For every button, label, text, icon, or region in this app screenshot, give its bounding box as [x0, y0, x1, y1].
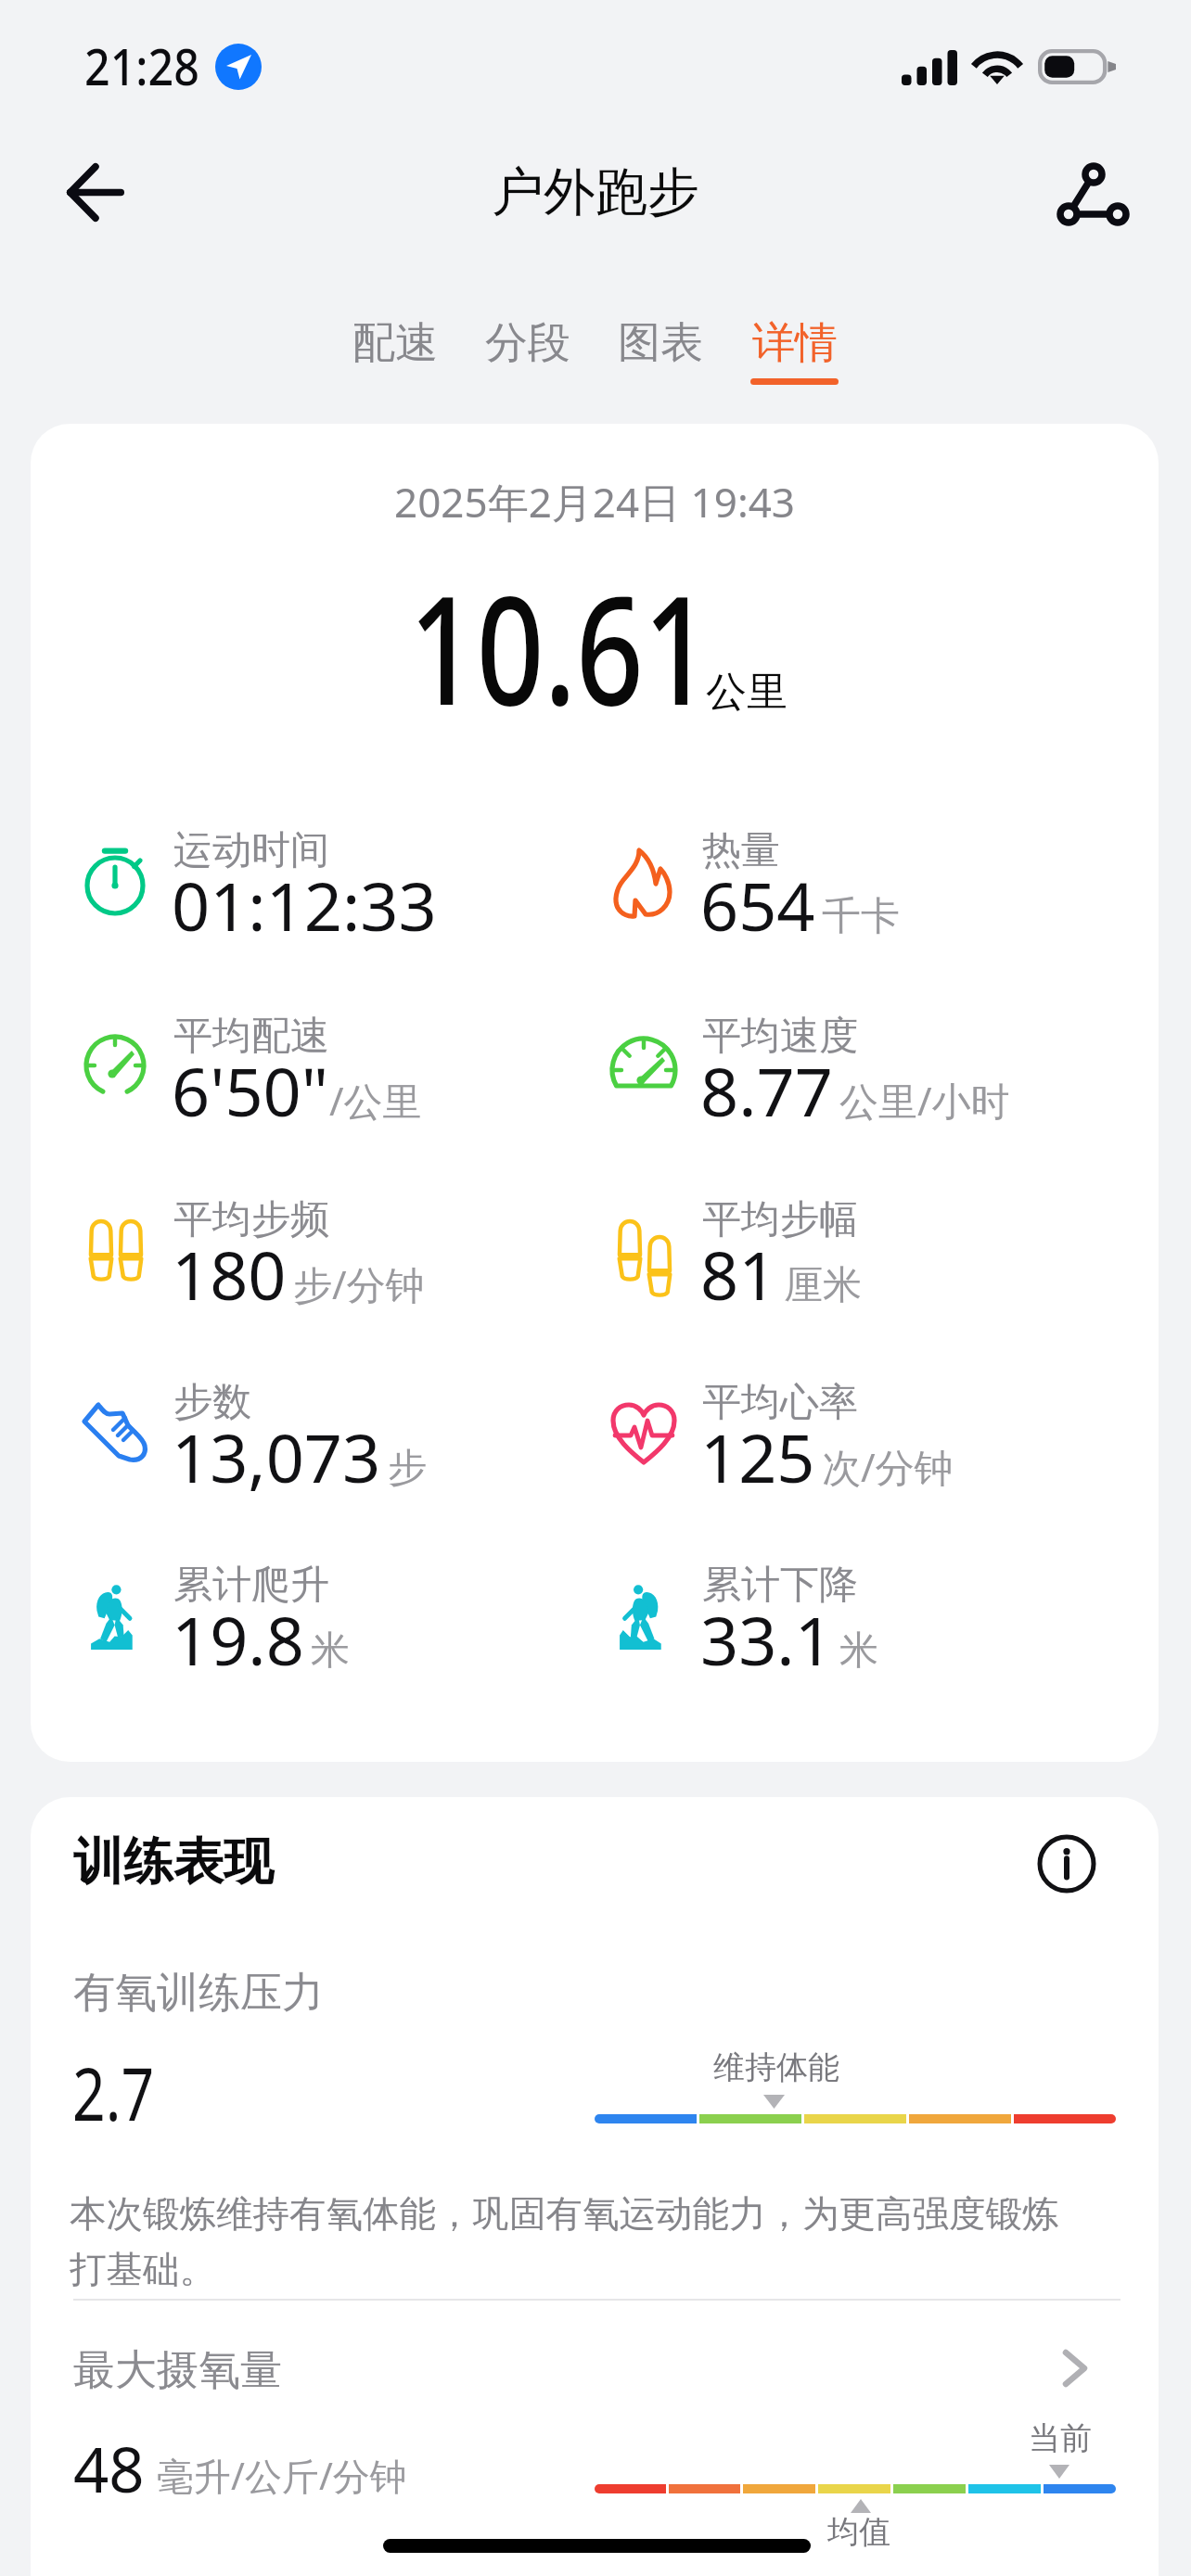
- staticText: 10.61: [409, 544, 711, 749]
- button[interactable]: 图表: [618, 316, 703, 378]
- staticText: 热量: [702, 826, 780, 875]
- staticText: 平均配速: [173, 1012, 329, 1061]
- staticText: 维持体能: [713, 2047, 839, 2087]
- staticText: 125: [700, 1411, 815, 1502]
- staticText: 当前: [1029, 2418, 1092, 2458]
- staticText: 均值: [827, 2512, 890, 2552]
- button[interactable]: Share: [1045, 147, 1141, 242]
- staticText: 13,073: [172, 1411, 381, 1502]
- button[interactable]: Back: [46, 143, 145, 241]
- staticText: 48: [73, 2426, 145, 2510]
- staticText: 8.77: [700, 1045, 833, 1136]
- button[interactable]: 分段: [485, 316, 570, 378]
- staticText: 19.8: [172, 1594, 304, 1685]
- staticText: 米: [839, 1626, 878, 1676]
- staticText: 图表: [618, 316, 703, 370]
- staticText: 公里/小时: [839, 1074, 1010, 1127]
- staticText: 配速: [352, 316, 438, 370]
- staticText: 平均步频: [173, 1195, 329, 1244]
- staticText: 累计爬升: [173, 1561, 329, 1610]
- staticText: 户外跑步: [492, 159, 699, 225]
- staticText: 180: [172, 1229, 287, 1320]
- staticText: 平均步幅: [702, 1195, 858, 1244]
- button[interactable]: 配速: [352, 316, 438, 378]
- staticText: 详情: [752, 316, 838, 370]
- staticText: 累计下降: [702, 1561, 858, 1610]
- staticText: 33.1: [700, 1594, 833, 1685]
- staticText: 运动时间: [173, 826, 329, 875]
- button[interactable]: 最大摄氧量: [31, 2326, 1159, 2400]
- staticText: 有氧训练压力: [73, 1967, 324, 2020]
- staticText: 2025年2月24日 19:43: [31, 474, 1159, 529]
- staticText: 步/分钟: [293, 1257, 425, 1310]
- staticText: 千卡: [822, 892, 900, 941]
- staticText: 01:12:33: [172, 860, 437, 950]
- staticText: 米: [311, 1626, 350, 1676]
- staticText: /公里: [329, 1074, 422, 1127]
- button[interactable]: Info: [1033, 1830, 1100, 1897]
- button[interactable]: 详情: [750, 316, 839, 385]
- staticText: 分段: [485, 316, 570, 370]
- staticText: 毫升/公斤/分钟: [157, 2450, 407, 2501]
- staticText: 公里: [706, 667, 788, 718]
- staticText: 6'50": [172, 1045, 329, 1136]
- staticText: 654: [700, 860, 815, 950]
- staticText: 平均速度: [702, 1012, 858, 1061]
- staticText: 最大摄氧量: [73, 2344, 282, 2397]
- staticText: 厘米: [784, 1261, 862, 1310]
- staticText: 平均心率: [702, 1378, 858, 1427]
- staticText: 训练表现: [73, 1830, 274, 1894]
- staticText: 步数: [173, 1378, 251, 1427]
- staticText: 步: [388, 1444, 427, 1493]
- staticText: 次/分钟: [822, 1440, 954, 1493]
- staticText: 81: [700, 1229, 777, 1320]
- staticText: 21:28: [84, 31, 200, 100]
- staticText: 2.7: [72, 2044, 155, 2142]
- staticText: 本次锻炼维持有氧体能，巩固有氧运动能力，为更高强度锻炼打基础。: [70, 2191, 1081, 2293]
